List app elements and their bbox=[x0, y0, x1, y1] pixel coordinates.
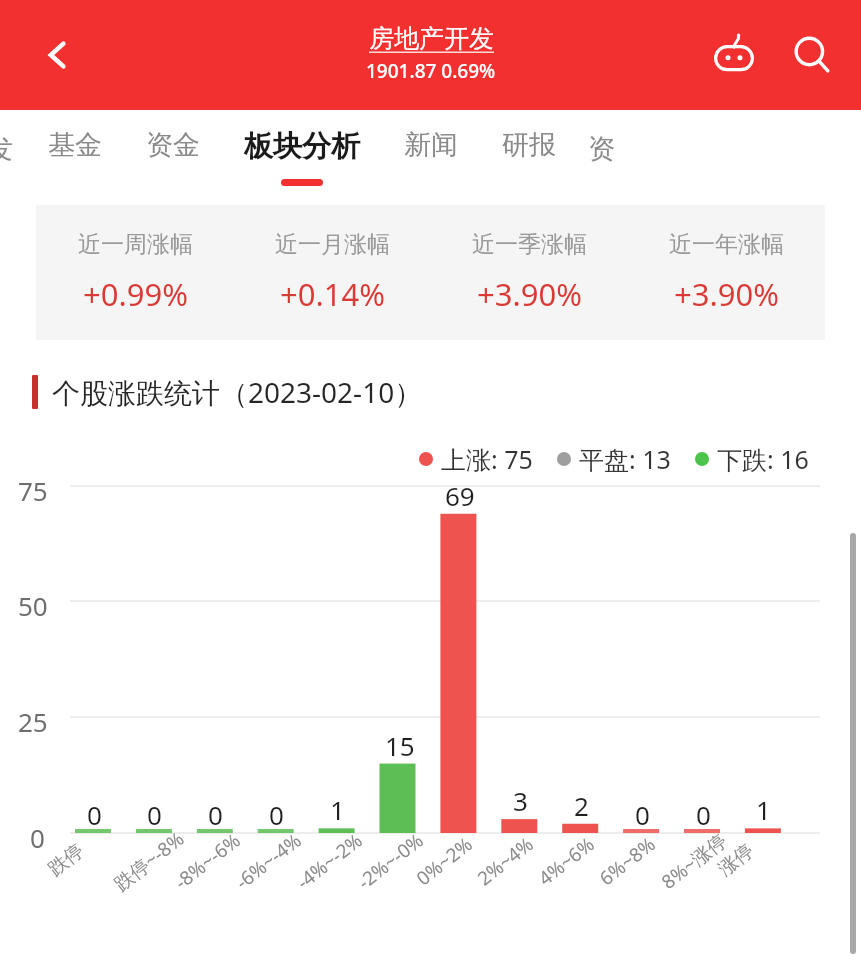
staticText: 15 bbox=[385, 728, 415, 763]
staticText: 3 bbox=[513, 783, 528, 818]
staticText: +0.14% bbox=[280, 273, 385, 315]
staticText: 板块分析 bbox=[244, 128, 360, 165]
staticText: 1 bbox=[756, 792, 771, 827]
button[interactable]: 板块分析 bbox=[244, 128, 360, 186]
button[interactable]: 资金 bbox=[146, 128, 200, 176]
staticText: 近一周涨幅 bbox=[78, 230, 193, 259]
staticText: 0 bbox=[208, 797, 223, 832]
staticText: 涨停 bbox=[714, 839, 758, 881]
button[interactable]: 上涨: 75 bbox=[419, 442, 533, 476]
staticText: 50 bbox=[18, 588, 48, 623]
staticText: 1901.87 0.69% bbox=[366, 58, 496, 84]
button[interactable]: 新闻 bbox=[404, 128, 458, 176]
staticText: 房地产开发 bbox=[369, 23, 494, 54]
staticText: 个股涨跌统计（2023-02-10） bbox=[52, 373, 423, 411]
staticText: 0 bbox=[635, 797, 650, 832]
staticText: 1 bbox=[330, 792, 345, 827]
staticText: 0%~2% bbox=[411, 831, 478, 891]
staticText: 2%~4% bbox=[472, 831, 539, 891]
staticText: 新闻 bbox=[404, 128, 458, 162]
staticText: 资 bbox=[588, 132, 612, 166]
staticText: 基金 bbox=[48, 128, 102, 162]
button[interactable]: 研报 bbox=[502, 128, 556, 176]
staticText: 0 bbox=[30, 820, 45, 855]
button[interactable]: 发 bbox=[0, 128, 26, 188]
staticText: 25 bbox=[18, 704, 48, 739]
staticText: -2%~-0% bbox=[352, 827, 429, 895]
staticText: +0.99% bbox=[83, 273, 188, 315]
button[interactable]: 基金 bbox=[48, 128, 102, 176]
staticText: 0 bbox=[87, 797, 102, 832]
staticText: 6%~8% bbox=[594, 831, 661, 891]
staticText: 上涨: 75 bbox=[441, 442, 533, 476]
staticText: 近一年涨幅 bbox=[669, 230, 784, 259]
staticText: 发 bbox=[0, 132, 12, 166]
button[interactable]: AI assistant bbox=[703, 24, 765, 86]
staticText: 2 bbox=[574, 788, 589, 823]
button[interactable]: 近一季涨幅 bbox=[431, 205, 628, 340]
staticText: 69 bbox=[445, 478, 475, 513]
staticText: 资金 bbox=[146, 128, 200, 162]
staticText: -4%~-2% bbox=[291, 827, 368, 895]
staticText: 8%~涨停 bbox=[656, 827, 732, 895]
staticText: 0 bbox=[269, 797, 284, 832]
button[interactable]: 资 bbox=[578, 128, 602, 188]
staticText: 近一季涨幅 bbox=[472, 230, 587, 259]
staticText: 跌停 bbox=[44, 839, 88, 881]
button[interactable]: Search bbox=[781, 24, 843, 86]
button[interactable]: 下跌: 16 bbox=[695, 442, 809, 476]
staticText: 75 bbox=[18, 473, 48, 508]
staticText: +3.90% bbox=[477, 273, 582, 315]
staticText: 跌停~-8% bbox=[109, 825, 189, 896]
staticText: 0 bbox=[696, 797, 711, 832]
staticText: -8%~-6% bbox=[169, 827, 246, 895]
button[interactable]: 近一月涨幅 bbox=[234, 205, 431, 340]
button[interactable]: 近一周涨幅 bbox=[36, 205, 234, 340]
button[interactable]: Back bbox=[30, 27, 86, 83]
staticText: 下跌: 16 bbox=[717, 442, 809, 476]
staticText: 4%~6% bbox=[533, 831, 600, 891]
staticText: 近一月涨幅 bbox=[275, 230, 390, 259]
staticText: 0 bbox=[147, 797, 162, 832]
button[interactable]: 近一年涨幅 bbox=[628, 205, 825, 340]
staticText: +3.90% bbox=[674, 273, 779, 315]
button[interactable]: 平盘: 13 bbox=[557, 442, 671, 476]
staticText: -6%~-4% bbox=[230, 827, 307, 895]
staticText: 研报 bbox=[502, 128, 556, 162]
staticText: 平盘: 13 bbox=[579, 442, 671, 476]
